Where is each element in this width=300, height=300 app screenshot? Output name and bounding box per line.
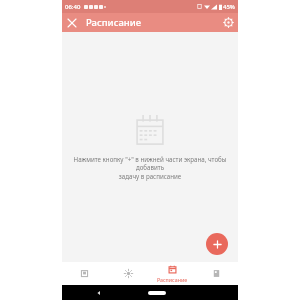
staticText: 06:40	[65, 3, 81, 11]
button[interactable]: Add task	[206, 233, 228, 255]
button[interactable]: Tab	[106, 267, 150, 280]
button[interactable]: Home	[148, 291, 166, 295]
button[interactable]: Back	[92, 286, 106, 300]
staticText: Расписание	[86, 16, 142, 29]
button[interactable]: Tab	[62, 267, 106, 280]
button[interactable]: Close	[62, 13, 81, 32]
button[interactable]: Расписание	[150, 263, 194, 285]
button[interactable]: Settings	[219, 13, 238, 32]
staticText: Расписание	[157, 276, 188, 283]
button[interactable]: Tab	[194, 267, 238, 280]
staticText: 45%	[223, 3, 235, 11]
staticText: Нажмите кнопку "+" в нижней части экрана…	[70, 155, 230, 180]
